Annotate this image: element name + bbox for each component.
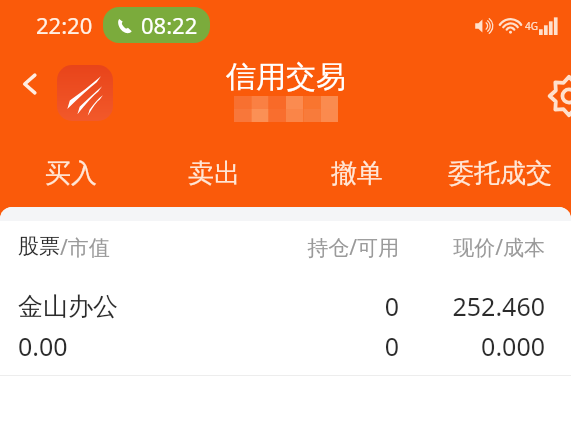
- staticText: /市值: [60, 233, 110, 262]
- staticText: 股票: [18, 233, 60, 259]
- button[interactable]: App logo: [57, 65, 113, 121]
- button[interactable]: 撤单: [285, 140, 428, 207]
- staticText: 0: [259, 329, 399, 363]
- button[interactable]: 卖出: [142, 140, 285, 207]
- staticText: 金山办公: [18, 291, 259, 322]
- staticText: 252.460: [417, 289, 545, 323]
- staticText: 持仓/可用: [259, 233, 399, 262]
- staticText: 委托成交: [448, 157, 552, 190]
- staticText: 08:22: [141, 10, 198, 40]
- staticText: 现价/成本: [417, 233, 545, 262]
- staticText: 0.000: [417, 329, 545, 363]
- button[interactable]: 买入: [0, 140, 142, 207]
- staticText: 买入: [45, 157, 97, 190]
- staticText: 22:20: [36, 10, 93, 40]
- staticText: 撤单: [331, 157, 383, 190]
- button[interactable]: Settings: [545, 72, 571, 120]
- staticText: 信用交易: [226, 58, 346, 96]
- button[interactable]: 金山办公: [0, 273, 571, 363]
- button[interactable]: Back: [8, 62, 52, 106]
- staticText: 4G: [525, 19, 538, 33]
- staticText: 0: [259, 289, 399, 323]
- button[interactable]: 委托成交: [428, 140, 571, 207]
- staticText: 卖出: [188, 157, 240, 190]
- staticText: 0.00: [18, 329, 259, 363]
